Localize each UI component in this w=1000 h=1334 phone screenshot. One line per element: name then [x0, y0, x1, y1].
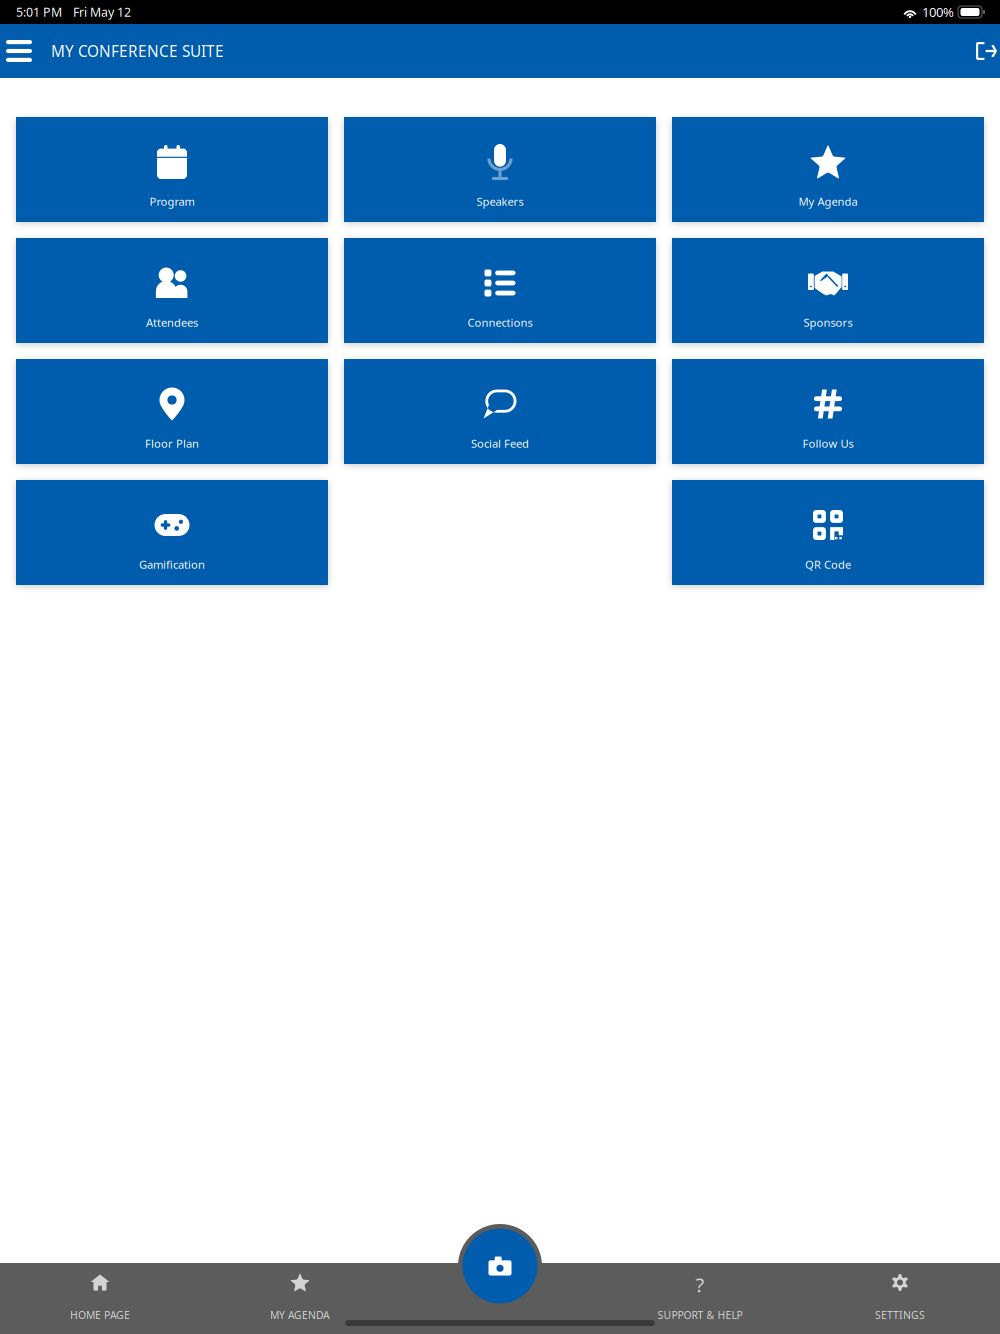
staticText: SETTINGS: [875, 1308, 925, 1322]
staticText: Floor Plan: [145, 436, 199, 451]
staticText: 5:01 PM: [16, 4, 62, 20]
button[interactable]: MY AGENDA: [200, 1263, 400, 1334]
staticText: My Agenda: [798, 194, 857, 209]
button[interactable]: Attendees: [16, 238, 328, 343]
button[interactable]: HOME PAGE: [0, 1263, 200, 1334]
staticText: Connections: [467, 315, 532, 330]
button[interactable]: Program: [16, 117, 328, 222]
button[interactable]: ?: [600, 1263, 800, 1334]
staticText: HOME PAGE: [70, 1308, 130, 1322]
staticText: SUPPORT & HELP: [657, 1308, 742, 1322]
staticText: MY CONFERENCE SUITE: [51, 41, 224, 61]
staticText: 100%: [922, 3, 954, 21]
staticText: Follow Us: [802, 436, 853, 451]
staticText: MY AGENDA: [270, 1308, 330, 1322]
button[interactable]: Camera: [458, 1224, 542, 1308]
button[interactable]: Connections: [344, 238, 656, 343]
button[interactable]: QR Code: [672, 480, 984, 585]
button[interactable]: Follow Us: [672, 359, 984, 464]
button[interactable]: SETTINGS: [800, 1263, 1000, 1334]
button[interactable]: Log out: [960, 24, 1000, 78]
staticText: Attendees: [146, 315, 198, 330]
button[interactable]: Floor Plan: [16, 359, 328, 464]
button[interactable]: Social Feed: [344, 359, 656, 464]
button[interactable]: Menu: [0, 24, 51, 78]
staticText: Gamification: [139, 557, 205, 572]
staticText: ?: [695, 1271, 704, 1298]
staticText: Social Feed: [471, 436, 529, 451]
button[interactable]: Sponsors: [672, 238, 984, 343]
staticText: QR Code: [805, 557, 851, 572]
button[interactable]: My Agenda: [672, 117, 984, 222]
staticText: Speakers: [476, 194, 523, 209]
staticText: Fri May 12: [73, 4, 131, 20]
button[interactable]: Gamification: [16, 480, 328, 585]
staticText: Program: [149, 194, 194, 209]
staticText: Sponsors: [803, 315, 852, 330]
button[interactable]: Speakers: [344, 117, 656, 222]
